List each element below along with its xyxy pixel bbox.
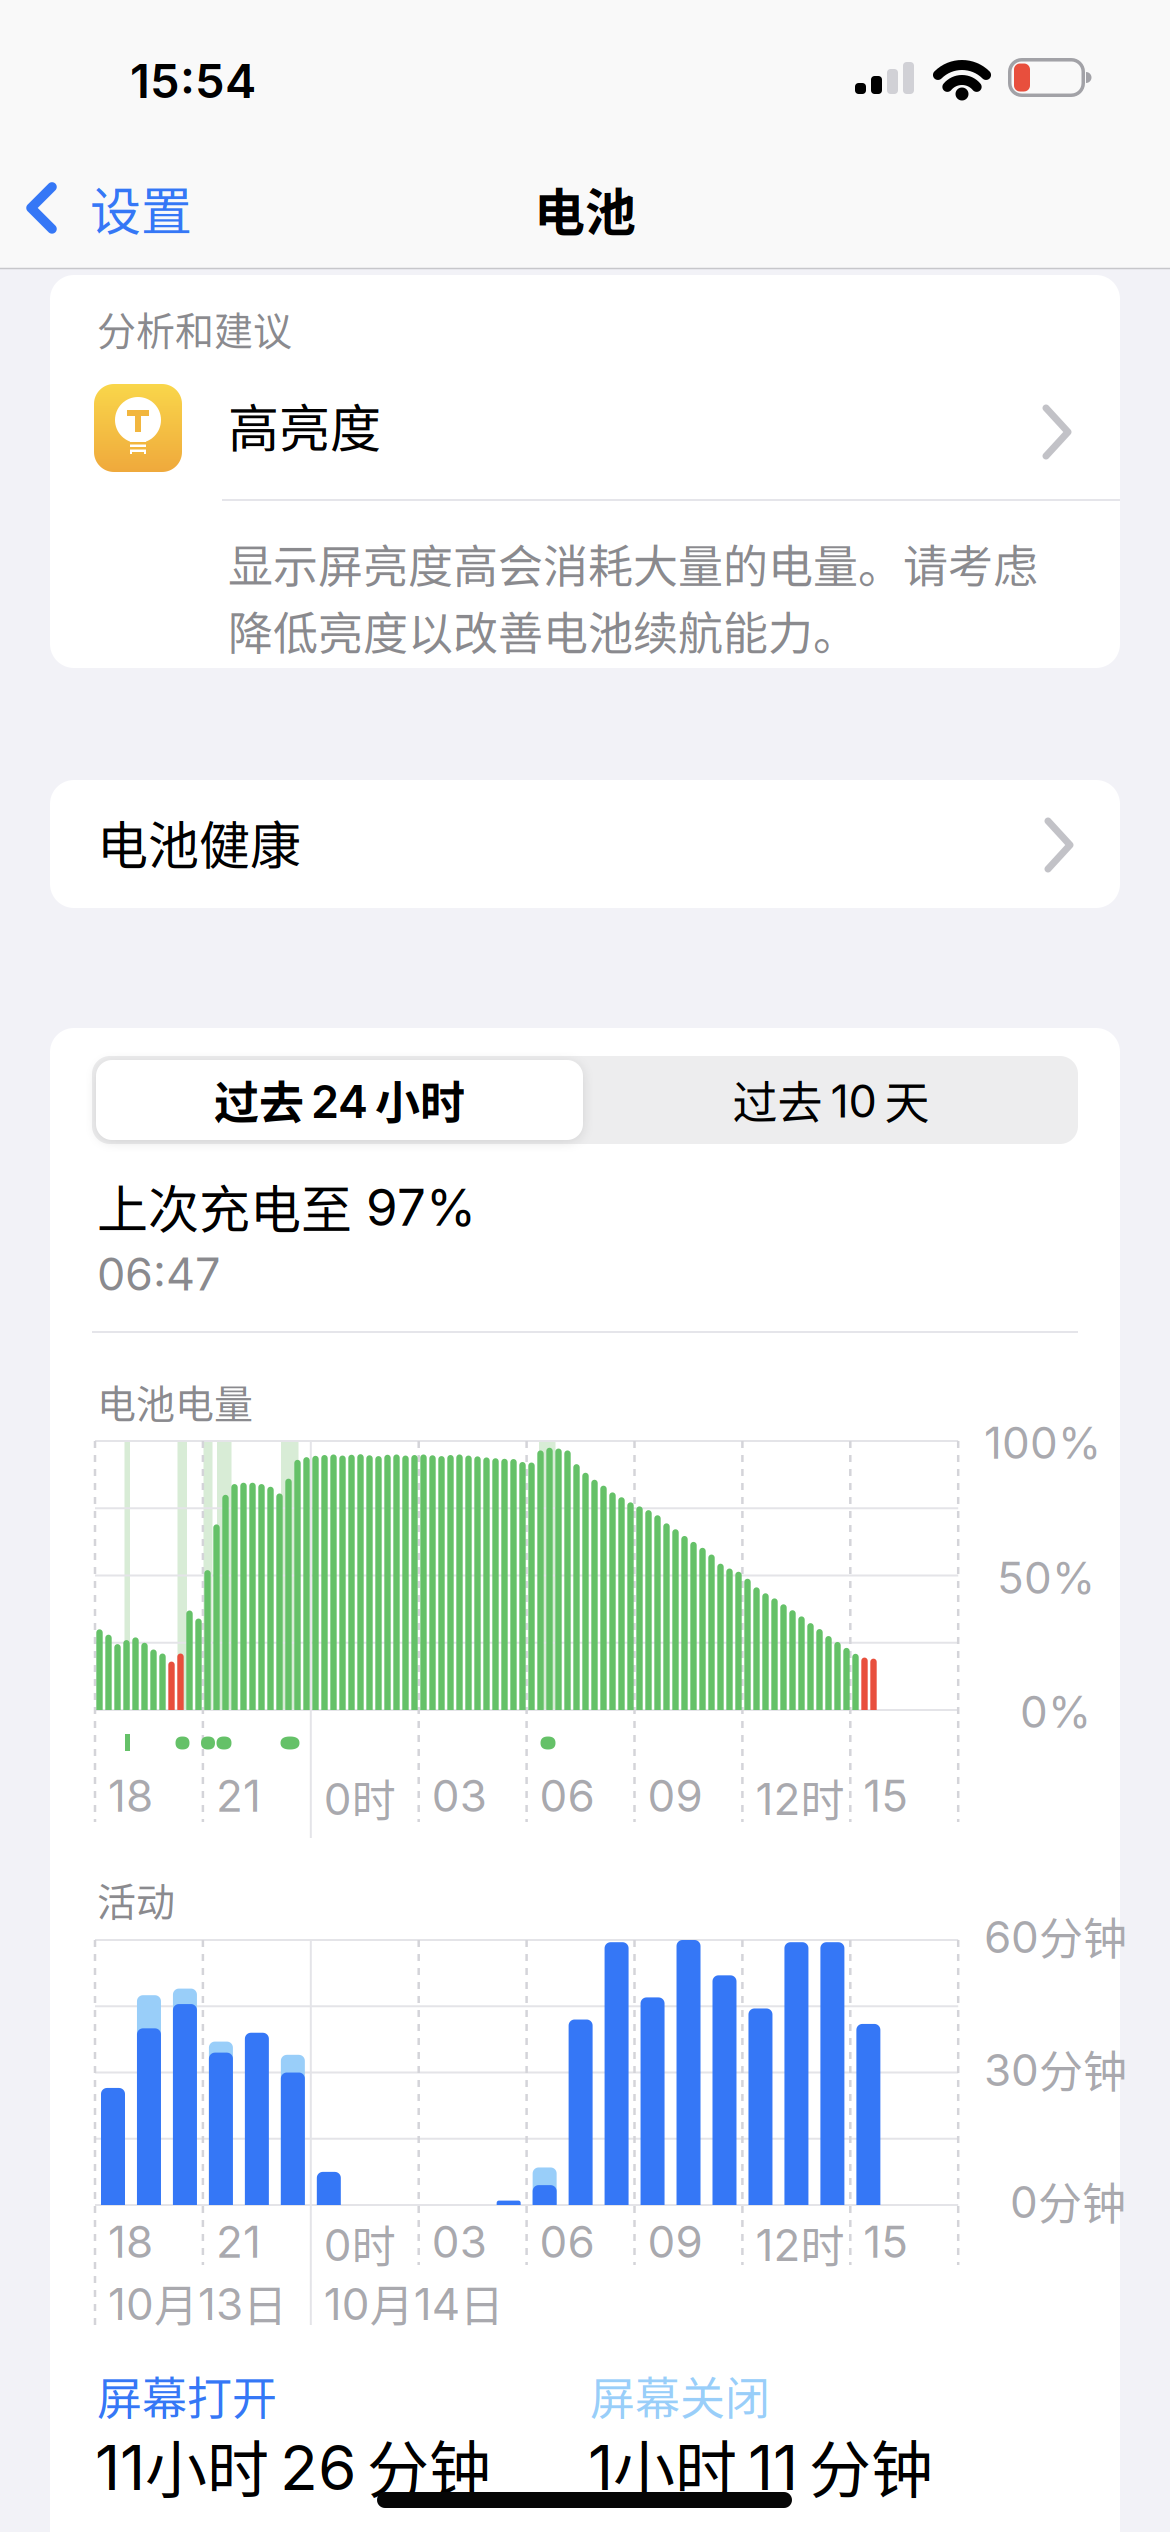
staticText: 分析和建议 bbox=[97, 300, 292, 356]
staticText: 1小时 11 分钟 bbox=[588, 2421, 933, 2511]
button[interactable]: 电池健康 bbox=[50, 780, 1120, 908]
button[interactable]: 返回设置 bbox=[27, 171, 192, 245]
staticText: 18 bbox=[108, 1769, 153, 1822]
staticText: 10月14日 bbox=[324, 2271, 504, 2335]
staticText: 03 bbox=[432, 1769, 487, 1822]
staticText: 18 bbox=[108, 2215, 153, 2268]
staticText: 12时 bbox=[755, 1766, 844, 1830]
staticText: 30分钟 bbox=[984, 2037, 1127, 2101]
staticText: 电池健康 bbox=[97, 805, 301, 879]
staticText: 电池电量 bbox=[97, 1373, 253, 1429]
staticText: 21 bbox=[216, 2215, 261, 2268]
staticText: 06 bbox=[540, 1769, 595, 1822]
staticText: 屏幕打开 bbox=[97, 2363, 277, 2428]
staticText: 高亮度 bbox=[228, 388, 381, 462]
staticText: 设置 bbox=[90, 171, 192, 245]
staticText: 0% bbox=[1020, 1685, 1091, 1738]
staticText: 15 bbox=[863, 2215, 908, 2268]
staticText: 15 bbox=[863, 1769, 908, 1822]
staticText: 屏幕关闭 bbox=[590, 2363, 770, 2428]
staticText: 12时 bbox=[755, 2212, 844, 2276]
staticText: 09 bbox=[647, 1769, 702, 1822]
staticText: 09 bbox=[647, 2215, 702, 2268]
staticText: 上次充电至 97% bbox=[97, 1169, 476, 1243]
staticText: 0分钟 bbox=[1010, 2169, 1126, 2233]
staticText: 60分钟 bbox=[984, 1904, 1127, 1968]
staticText: 100% bbox=[984, 1416, 1101, 1469]
staticText: 15:54 bbox=[130, 53, 256, 109]
staticText: 06 bbox=[540, 2215, 595, 2268]
staticText: 电池 bbox=[534, 172, 636, 246]
staticText: 10月13日 bbox=[108, 2271, 287, 2335]
staticText: 显示屏亮度高会消耗大量的电量。请考虑 降低亮度以改善电池续航能力。 bbox=[228, 531, 1038, 663]
staticText: 03 bbox=[432, 2215, 487, 2268]
staticText: 50% bbox=[997, 1551, 1095, 1604]
staticText: 过去 10 天 bbox=[732, 1067, 929, 1133]
staticText: 0时 bbox=[324, 2212, 396, 2276]
staticText: 21 bbox=[216, 1769, 261, 1822]
staticText: 过去 24 小时 bbox=[214, 1067, 465, 1133]
staticText: 活动 bbox=[97, 1871, 175, 1927]
staticText: 0时 bbox=[324, 1766, 396, 1830]
staticText: 11小时 26 分钟 bbox=[95, 2421, 491, 2511]
staticText: 06:47 bbox=[97, 1247, 220, 1301]
button[interactable]: 高亮度 bbox=[50, 360, 1120, 500]
button[interactable]: 过去 24 小时 bbox=[96, 1060, 583, 1140]
button[interactable]: 过去 10 天 bbox=[586, 1060, 1076, 1140]
